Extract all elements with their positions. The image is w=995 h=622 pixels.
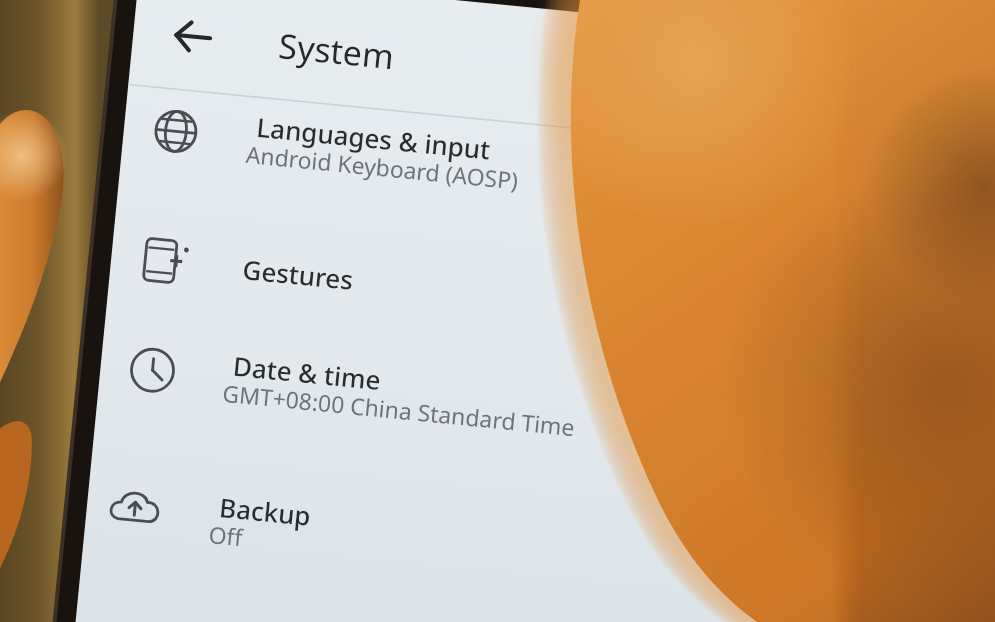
- button[interactable]: System settings screen photo: [0, 0, 995, 622]
